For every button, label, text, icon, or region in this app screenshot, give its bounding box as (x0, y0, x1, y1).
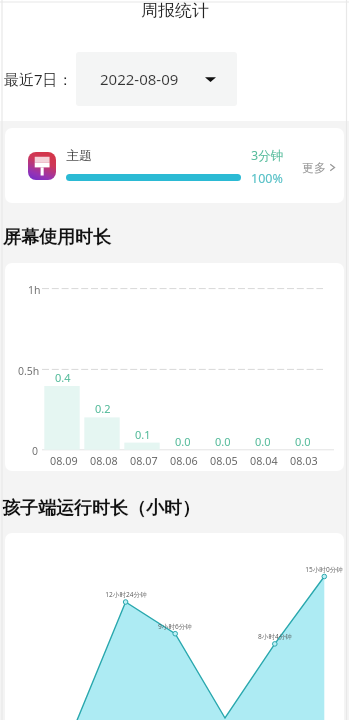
staticText: 12小时24分钟 (105, 590, 147, 599)
staticText: 0.2 (95, 401, 111, 416)
staticText: 0.0 (255, 434, 271, 449)
staticText: 孩子端运行时长（小时） (2, 497, 200, 520)
staticText: 2022-08-09 (100, 69, 179, 89)
staticText: 9小时6分钟 (158, 622, 192, 631)
staticText: 0.0 (295, 434, 311, 449)
staticText: 08.08 (90, 453, 118, 468)
staticText: 100% (251, 170, 283, 187)
staticText: 主题 (66, 147, 92, 163)
staticText: 0.5h (18, 364, 40, 378)
staticText: 0.1 (135, 427, 151, 442)
staticText: 8小时4分钟 (258, 632, 292, 641)
staticText: 3分钟 (251, 147, 284, 164)
staticText: 08.06 (170, 453, 198, 468)
staticText: 周报统计 (141, 0, 209, 21)
button[interactable]: 主题 (5, 128, 344, 203)
staticText: 08.07 (130, 453, 158, 468)
button[interactable]: 2022-08-09 (76, 52, 237, 106)
staticText: 15小时0分钟 (305, 565, 343, 574)
staticText: 1h (28, 283, 41, 297)
staticText: 08.05 (210, 453, 238, 468)
staticText: 0.0 (175, 434, 191, 449)
staticText: 08.03 (290, 453, 318, 468)
staticText: 0.0 (215, 434, 231, 449)
staticText: 最近7日： (4, 69, 73, 89)
staticText: 0.4 (55, 370, 71, 385)
staticText: 更多 (302, 160, 326, 175)
staticText: 屏幕使用时长 (3, 226, 111, 249)
button[interactable]: 更多 (299, 156, 340, 179)
staticText: 08.09 (50, 453, 78, 468)
staticText: 0 (32, 444, 39, 458)
staticText: 08.04 (250, 453, 278, 468)
